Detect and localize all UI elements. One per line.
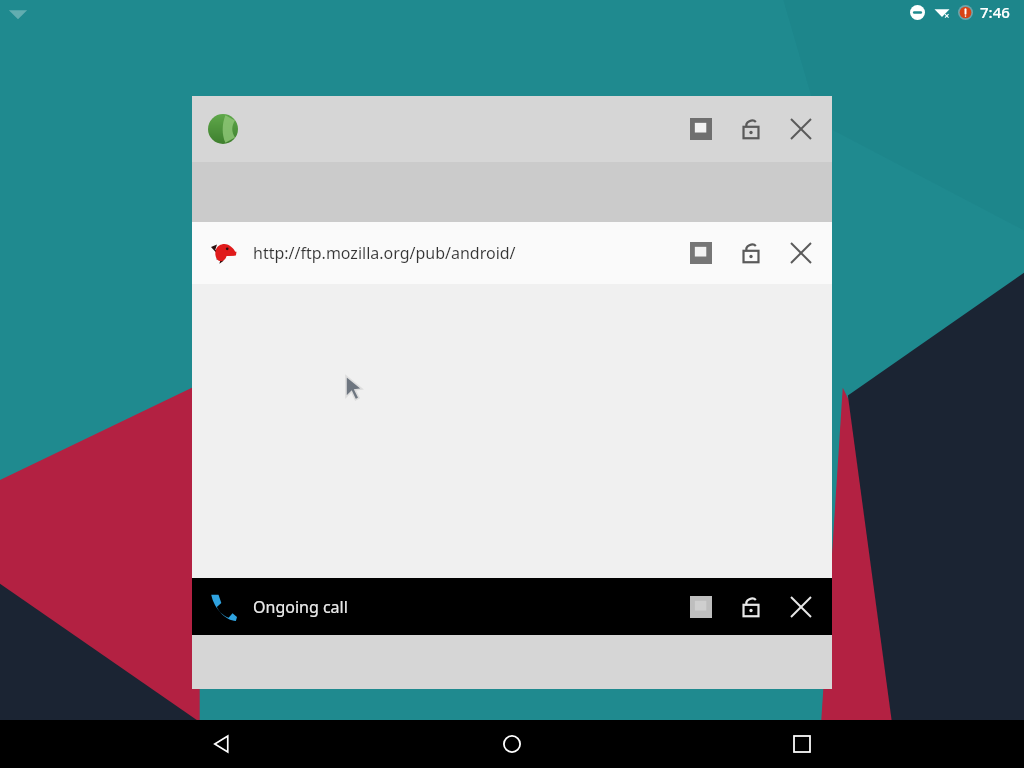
staticText: http://ftp.mozilla.org/pub/android/ [253,242,678,264]
button[interactable]: Close [778,106,824,152]
button[interactable]: Toggle window size [678,584,724,630]
staticText: Ongoing call [253,596,678,618]
button[interactable]: Lock window [728,230,774,276]
staticText: 7:46 [980,2,1010,22]
button[interactable]: Ongoing call [192,578,832,635]
button[interactable]: Back [198,720,246,768]
button[interactable]: Toggle window size [678,106,724,152]
button[interactable]: Recent apps [778,720,826,768]
button[interactable]: Close [778,584,824,630]
button[interactable]: Toggle window size [678,230,724,276]
button[interactable]: Lock window [728,106,774,152]
button[interactable]: http://ftp.mozilla.org/pub/android/ [192,222,832,284]
button[interactable]: Close [778,230,824,276]
button[interactable]: Lock window [728,584,774,630]
button[interactable]: Home [488,720,536,768]
button[interactable]: Toggle window size [192,96,832,162]
